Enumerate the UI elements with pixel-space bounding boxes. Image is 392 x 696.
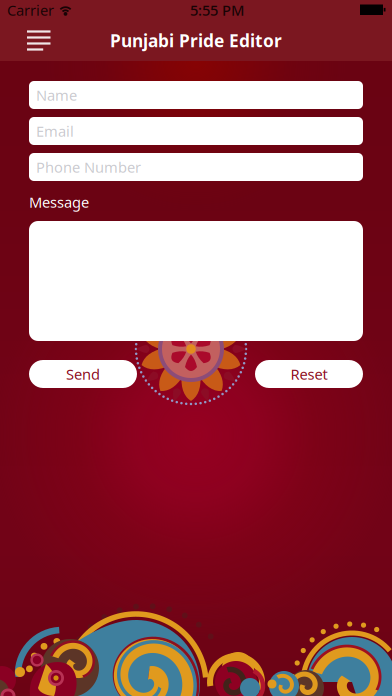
staticText: Phone Number [36,157,141,177]
staticText: Message [29,192,89,212]
staticText: Email [36,121,74,141]
staticText: 5:55 PM [190,0,244,20]
staticText: Name [36,85,77,105]
staticText: Send [66,364,100,384]
staticText: Punjabi Pride Editor [110,29,282,52]
button[interactable]: Reset [255,360,363,388]
staticText: Carrier [7,0,54,20]
button[interactable]: Menu [19,20,58,61]
staticText: Reset [290,364,327,384]
button[interactable]: Send [29,360,137,388]
